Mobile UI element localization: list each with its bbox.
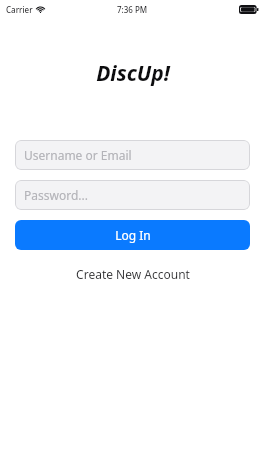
staticText: 7:36 PM xyxy=(117,4,148,15)
staticText: Password... xyxy=(24,187,88,203)
staticText: Username or Email xyxy=(24,147,132,163)
staticText: Create New Account xyxy=(76,266,190,282)
staticText: Carrier xyxy=(6,4,33,15)
staticText: DiscUp! xyxy=(96,59,170,88)
button[interactable]: Password... xyxy=(15,180,250,210)
other: Battery full xyxy=(239,5,259,14)
staticText: Log In xyxy=(115,227,151,243)
button[interactable]: Create New Account xyxy=(15,263,250,285)
button[interactable]: Username or Email xyxy=(15,140,250,170)
other: Wi-Fi signal xyxy=(36,5,45,14)
button[interactable]: Log In xyxy=(15,220,250,250)
